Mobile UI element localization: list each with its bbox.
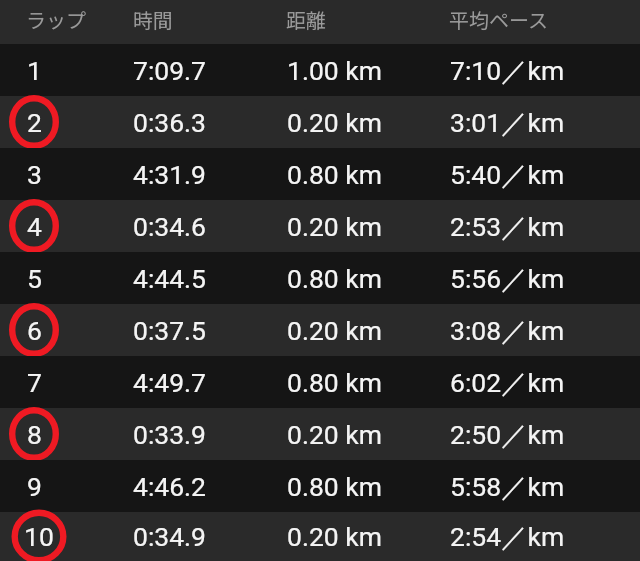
button[interactable]: 8 <box>0 408 640 460</box>
button[interactable]: 3 <box>0 148 640 200</box>
staticText: 7:09.7 <box>133 55 206 86</box>
staticText: 5:56／km <box>450 262 565 295</box>
staticText: 2 <box>27 107 42 138</box>
staticText: 5:58／km <box>450 470 565 503</box>
staticText: 0:36.3 <box>133 107 206 138</box>
staticText: 0.80 km <box>287 263 382 294</box>
staticText: 0:34.6 <box>133 211 206 242</box>
button[interactable]: 7 <box>0 356 640 408</box>
button[interactable]: 9 <box>0 460 640 512</box>
staticText: 距離 <box>286 5 326 34</box>
staticText: 0.20 km <box>287 211 382 242</box>
staticText: 8 <box>27 419 42 450</box>
staticText: 0.20 km <box>287 315 382 346</box>
staticText: 7 <box>27 367 42 398</box>
staticText: 7:10／km <box>450 54 565 87</box>
staticText: 10 <box>24 521 54 552</box>
staticText: 3:01／km <box>450 106 565 139</box>
staticText: 2:53／km <box>450 210 565 243</box>
staticText: 0.80 km <box>287 367 382 398</box>
staticText: 3 <box>27 159 42 190</box>
staticText: 4:31.9 <box>133 159 206 190</box>
staticText: 0.20 km <box>287 419 382 450</box>
staticText: 6:02／km <box>450 366 565 399</box>
staticText: 0.20 km <box>287 521 382 552</box>
staticText: 0:34.9 <box>133 521 206 552</box>
staticText: 2:54／km <box>450 520 565 553</box>
staticText: 0.80 km <box>287 159 382 190</box>
staticText: 4:44.5 <box>133 263 206 294</box>
button[interactable]: 10 <box>0 512 640 561</box>
staticText: 5 <box>27 263 42 294</box>
staticText: 6 <box>27 315 42 346</box>
staticText: 4:49.7 <box>133 367 206 398</box>
staticText: 0.80 km <box>287 471 382 502</box>
staticText: 4:46.2 <box>133 471 206 502</box>
staticText: 9 <box>27 471 42 502</box>
button[interactable]: 5 <box>0 252 640 304</box>
staticText: 2:50／km <box>450 418 565 451</box>
button[interactable]: 1 <box>0 44 640 96</box>
staticText: 1 <box>27 55 42 86</box>
staticText: 0:33.9 <box>133 419 206 450</box>
staticText: 平均ペース <box>449 5 548 34</box>
button[interactable]: 4 <box>0 200 640 252</box>
staticText: 3:08／km <box>450 314 565 347</box>
staticText: 1.00 km <box>287 55 382 86</box>
staticText: 0:37.5 <box>133 315 206 346</box>
staticText: 5:40／km <box>450 158 565 191</box>
staticText: ラップ <box>26 5 86 34</box>
staticText: 0.20 km <box>287 107 382 138</box>
staticText: 時間 <box>133 5 173 34</box>
staticText: 4 <box>27 211 42 242</box>
button[interactable]: 6 <box>0 304 640 356</box>
button[interactable]: 2 <box>0 96 640 148</box>
